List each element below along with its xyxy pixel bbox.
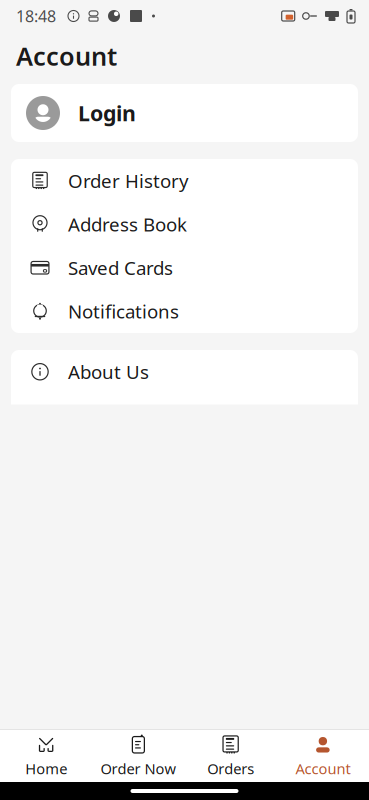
button[interactable]: Order Now (92, 731, 184, 781)
button[interactable]: Notifications (11, 289, 358, 333)
staticText: About Us (68, 359, 149, 384)
button[interactable]: Order History (11, 159, 358, 202)
staticText: 18:48 (16, 5, 56, 27)
staticText: Home (25, 759, 67, 778)
button[interactable]: Login (11, 84, 358, 142)
staticText: Account (16, 39, 117, 73)
button[interactable]: Address Book (11, 202, 358, 246)
staticText: Address Book (68, 212, 187, 237)
button[interactable]: About Us (11, 350, 358, 393)
staticText: Account (295, 759, 350, 778)
button[interactable]: Account (277, 731, 369, 781)
staticText: Orders (207, 759, 254, 778)
staticText: Order History (68, 168, 189, 193)
button[interactable]: Home (0, 731, 92, 781)
button[interactable]: Support (11, 393, 358, 437)
button[interactable]: Orders (184, 731, 277, 781)
staticText: Saved Cards (68, 255, 173, 280)
staticText: Notifications (68, 299, 179, 324)
staticText: Order Now (100, 759, 176, 778)
button[interactable]: Saved Cards (11, 246, 358, 289)
staticText: Login (78, 99, 136, 127)
